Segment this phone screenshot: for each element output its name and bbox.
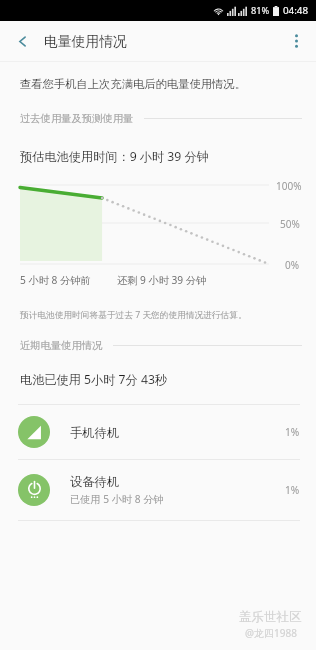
staticText: 还剩 9 小时 39 分钟: [117, 273, 207, 287]
staticText: 预估电池使用时间：9 小时 39 分钟: [20, 148, 209, 165]
staticText: 近期电量使用情况: [20, 339, 103, 352]
button[interactable]: Back: [4, 23, 40, 59]
button[interactable]: 设备待机: [0, 460, 316, 520]
staticText: 1%: [285, 425, 300, 439]
staticText: 查看您手机自上次充满电后的电量使用情况。: [20, 77, 246, 91]
staticText: 过去使用量及预测使用量: [20, 112, 134, 125]
staticText: 0%: [285, 258, 300, 272]
button[interactable]: 手机待机: [0, 405, 316, 459]
staticText: 50%: [280, 217, 300, 231]
staticText: 手机待机: [70, 425, 120, 440]
button[interactable]: More options: [276, 21, 316, 61]
staticText: 04:48: [283, 4, 309, 17]
staticText: 100%: [276, 179, 302, 193]
staticText: 5 小时 8 分钟前: [20, 273, 91, 287]
staticText: 电量使用情况: [44, 33, 127, 50]
staticText: 已使用 5 小时 8 分钟: [70, 492, 164, 506]
staticText: @龙四1988: [245, 626, 297, 640]
staticText: 电池已使用 5小时 7分 43秒: [20, 371, 168, 388]
staticText: 设备待机: [70, 474, 120, 489]
staticText: 预计电池使用时间将基于过去 7 天您的使用情况进行估算。: [20, 309, 247, 321]
staticText: 81%: [251, 4, 270, 17]
staticText: 1%: [285, 483, 300, 497]
staticText: 盖乐世社区: [239, 609, 302, 625]
